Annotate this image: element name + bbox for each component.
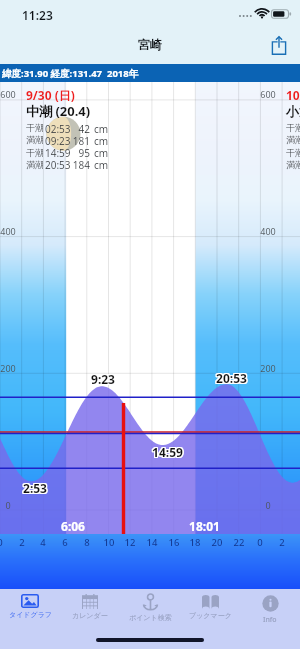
staticText: 14:59 <box>153 445 184 461</box>
staticText: 600 <box>0 88 19 100</box>
button[interactable]: Share <box>268 34 290 56</box>
staticText: 14:59 <box>152 444 183 460</box>
staticText: 16 <box>159 536 189 549</box>
staticText: 干潮 <box>286 122 300 133</box>
staticText: 11:23 <box>22 7 53 23</box>
staticText: 小潮 (21.4) <box>286 102 300 120</box>
staticText: 10/1 (月) <box>286 87 300 103</box>
staticText: 10 <box>94 536 124 549</box>
staticText: 200 <box>0 362 19 374</box>
staticText: 満潮 <box>26 159 44 170</box>
staticText: 2:53 <box>23 480 47 496</box>
staticText: 2 <box>267 536 297 549</box>
button[interactable]: タイドグラフ <box>0 589 60 625</box>
staticText: 2:53 <box>24 481 48 497</box>
staticText: 20:53 <box>217 371 248 387</box>
staticText: 9:23 <box>91 371 115 387</box>
staticText: 181 <box>71 134 90 148</box>
staticText: 42 <box>71 122 90 136</box>
staticText: 干潮 <box>286 147 300 158</box>
staticText: 6:06 <box>61 518 85 534</box>
button[interactable]: ポイント検索 <box>120 589 180 625</box>
staticText: 9:23 <box>92 370 116 386</box>
staticText: 9:23 <box>90 372 114 388</box>
staticText: 14:59 <box>153 443 184 459</box>
staticText: 20:53 <box>215 371 246 387</box>
staticText: 20:53 <box>215 370 246 386</box>
staticText: 9:23 <box>91 370 115 386</box>
staticText: 20:53 <box>217 370 248 386</box>
staticText: 600 <box>257 88 279 100</box>
button[interactable]: Info <box>240 589 300 625</box>
staticText: 2 <box>7 536 37 549</box>
staticText: 2:53 <box>22 481 46 497</box>
staticText: 6 <box>50 536 80 549</box>
staticText: 14:59 <box>151 443 182 459</box>
staticText: 18 <box>180 536 210 549</box>
staticText: 09:23 <box>45 134 71 148</box>
staticText: 95 <box>71 146 90 160</box>
staticText: 干潮 <box>26 122 44 133</box>
staticText: 0 <box>0 536 15 549</box>
staticText: 0 <box>0 499 19 511</box>
staticText: タイドグラフ <box>9 610 52 619</box>
staticText: 満潮 <box>286 134 300 145</box>
staticText: 02:53 <box>45 122 71 136</box>
staticText: 400 <box>0 225 19 237</box>
staticText: ブックマーク <box>189 611 232 620</box>
staticText: 緯度:31.90 経度:131.47 2018年 <box>2 67 139 80</box>
staticText: 12 <box>115 536 145 549</box>
staticText: 宮崎 <box>138 37 162 52</box>
staticText: cm <box>94 134 109 148</box>
staticText: 20:53 <box>45 158 71 172</box>
staticText: 18:01 <box>189 518 220 534</box>
staticText: 2:53 <box>23 481 47 497</box>
staticText: cm <box>94 158 109 172</box>
staticText: 9:23 <box>91 372 115 388</box>
staticText: 20:53 <box>216 371 247 387</box>
staticText: 2:53 <box>22 480 46 496</box>
staticText: 22 <box>224 536 254 549</box>
staticText: ポイント検索 <box>129 613 172 622</box>
staticText: 9/30 (日) <box>26 87 75 103</box>
staticText: 14:59 <box>151 445 182 461</box>
staticText: Info <box>263 615 277 625</box>
staticText: 14:59 <box>151 444 182 460</box>
staticText: 14:59 <box>152 443 183 459</box>
staticText: 14:59 <box>153 444 184 460</box>
staticText: 中潮 (20.4) <box>26 102 91 120</box>
staticText: 20 <box>202 536 232 549</box>
staticText: 200 <box>257 362 279 374</box>
staticText: 14 <box>137 536 167 549</box>
staticText: 4 <box>28 536 58 549</box>
staticText: cm <box>94 146 109 160</box>
staticText: 14:59 <box>152 445 183 461</box>
staticText: カレンダー <box>72 611 108 620</box>
staticText: 184 <box>71 158 90 172</box>
staticText: 2:53 <box>23 479 47 495</box>
staticText: 2:53 <box>24 479 48 495</box>
staticText: 20:53 <box>216 370 247 386</box>
staticText: 9:23 <box>90 371 114 387</box>
staticText: 満潮 <box>26 134 44 145</box>
staticText: 9:23 <box>92 372 116 388</box>
staticText: 満潮 <box>286 159 300 170</box>
button[interactable]: ブックマーク <box>180 589 240 625</box>
button[interactable]: カレンダー <box>60 589 120 625</box>
staticText: 0 <box>245 536 275 549</box>
staticText: 9:23 <box>92 371 116 387</box>
staticText: 9:23 <box>90 370 114 386</box>
staticText: cm <box>94 122 109 136</box>
staticText: 14:59 <box>45 146 71 160</box>
staticText: 干潮 <box>26 147 44 158</box>
staticText: 20:53 <box>216 369 247 385</box>
staticText: 400 <box>257 225 279 237</box>
staticText: 20:53 <box>215 369 246 385</box>
staticText: 20:53 <box>217 369 248 385</box>
staticText: 8 <box>72 536 102 549</box>
staticText: 2:53 <box>22 479 46 495</box>
staticText: 0 <box>257 499 279 511</box>
staticText: 2:53 <box>24 480 48 496</box>
